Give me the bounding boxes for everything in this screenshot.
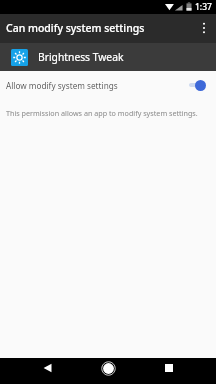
- staticText: Brightness Tweak: [38, 50, 124, 64]
- staticText: This permission allows an app to modify …: [6, 108, 198, 118]
- button[interactable]: Allow modify system settings: [0, 71, 216, 99]
- button[interactable]: Recent apps: [156, 358, 182, 378]
- staticText: Can modify system settings: [6, 21, 145, 35]
- button[interactable]: Back: [35, 358, 61, 378]
- staticText: 1:37: [195, 1, 212, 13]
- button[interactable]: Home: [95, 358, 121, 378]
- staticText: Allow modify system settings: [6, 80, 118, 91]
- button[interactable]: More options: [192, 14, 216, 43]
- button[interactable]: Brightness Tweak: [0, 43, 216, 71]
